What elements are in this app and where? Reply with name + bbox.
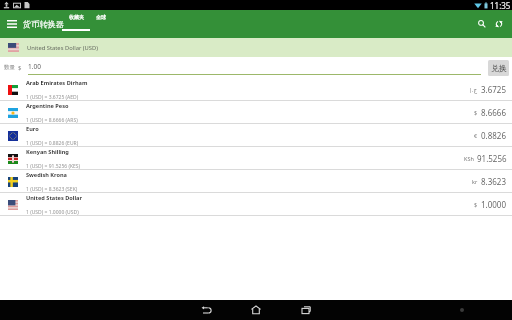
staticText: 1 (USD) = 3.6725 (AED) (26, 94, 79, 101)
button[interactable]: Search (473, 10, 490, 38)
staticText: 货币转换器 (23, 19, 64, 29)
staticText: 数量 (4, 64, 15, 71)
staticText: KSh (464, 155, 474, 162)
staticText: |.ج (469, 86, 478, 93)
staticText: United States Dollar (26, 194, 82, 202)
button[interactable]: 全球 (91, 10, 111, 38)
staticText: 8.3623 (481, 176, 507, 187)
staticText: Kenyan Shilling (26, 148, 69, 156)
staticText: Euro (26, 125, 39, 133)
button[interactable]: Refresh (490, 10, 507, 38)
button[interactable]: Arab Emirates Dirham (0, 78, 512, 101)
staticText: 0.8826 (481, 130, 507, 141)
staticText: 8.6666 (481, 107, 507, 118)
staticText: 全球 (96, 14, 106, 20)
staticText: 3.6725 (481, 84, 507, 95)
staticText: 1.00 (28, 62, 41, 71)
staticText: 11:35 (490, 0, 511, 10)
staticText: 1 (USD) = 1.0000 (USD) (26, 209, 79, 216)
staticText: Swedish Krona (26, 171, 67, 179)
staticText: 收藏夹 (69, 14, 84, 20)
staticText: 1 (USD) = 91.5256 (KES) (26, 163, 81, 170)
staticText: $ (18, 64, 22, 72)
button[interactable]: United States Dollar (USD) (0, 38, 512, 57)
staticText: Argentine Peso (26, 102, 69, 110)
button[interactable]: Argentine Peso (0, 101, 512, 124)
button[interactable]: Home (231, 300, 281, 320)
staticText: 91.5256 (477, 153, 507, 164)
staticText: kr (472, 178, 478, 185)
staticText: 兑换 (491, 63, 507, 73)
staticText: 1.0000 (481, 199, 507, 210)
staticText: 1 (USD) = 8.6666 (ARS) (26, 117, 78, 124)
staticText: 1 (USD) = 0.8826 (EUR) (26, 140, 79, 147)
button[interactable]: Menu (0, 10, 23, 38)
staticText: € (474, 132, 478, 139)
button[interactable]: Kenyan Shilling (0, 147, 512, 170)
button[interactable]: United States Dollar (0, 193, 512, 216)
staticText: $ (474, 201, 478, 208)
button[interactable]: Recents (281, 300, 331, 320)
button[interactable]: 兑换 (488, 60, 509, 76)
staticText: $ (474, 109, 478, 116)
staticText: United States Dollar (USD) (27, 44, 98, 52)
button[interactable]: Euro (0, 124, 512, 147)
staticText: 1 (USD) = 8.3623 (SEK) (26, 186, 78, 193)
button[interactable]: 收藏夹 (62, 10, 90, 38)
button[interactable]: Swedish Krona (0, 170, 512, 193)
button[interactable]: Back (181, 300, 231, 320)
staticText: Arab Emirates Dirham (26, 79, 88, 87)
